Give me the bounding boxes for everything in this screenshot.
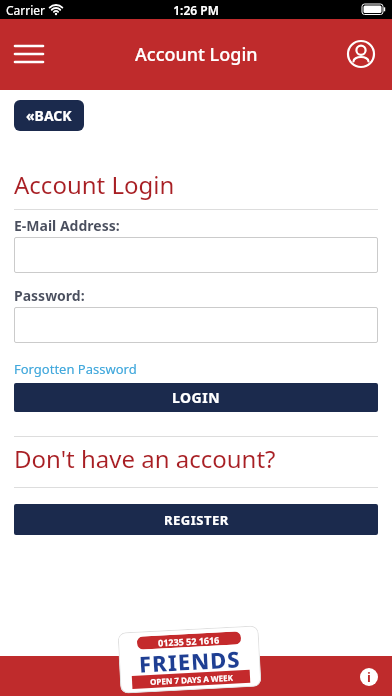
- button[interactable]: [8, 36, 50, 72]
- staticText: FRIENDS: [138, 643, 242, 679]
- button[interactable]: [344, 37, 378, 71]
- button[interactable]: [14, 237, 378, 273]
- staticText: E-Mail Address:: [14, 216, 120, 235]
- staticText: i: [367, 668, 371, 686]
- staticText: Account Login: [135, 42, 258, 67]
- staticText: OPEN 7 DAYS A WEEK: [150, 672, 233, 687]
- staticText: Password:: [14, 286, 85, 305]
- button[interactable]: i: [360, 668, 378, 686]
- staticText: Account Login: [14, 168, 175, 201]
- button[interactable]: REGISTER: [14, 504, 378, 535]
- button[interactable]: Forgotten Password: [14, 360, 137, 378]
- button[interactable]: «BACK: [14, 100, 84, 131]
- staticText: 01235 52 1616: [158, 633, 220, 649]
- staticText: Don't have an account?: [14, 442, 276, 475]
- staticText: Carrier: [6, 2, 46, 18]
- staticText: REGISTER: [164, 511, 229, 529]
- staticText: 1:26 PM: [0, 2, 392, 18]
- button[interactable]: [14, 307, 378, 343]
- staticText: «BACK: [26, 106, 72, 125]
- button[interactable]: LOGIN: [14, 383, 378, 412]
- staticText: LOGIN: [172, 388, 221, 407]
